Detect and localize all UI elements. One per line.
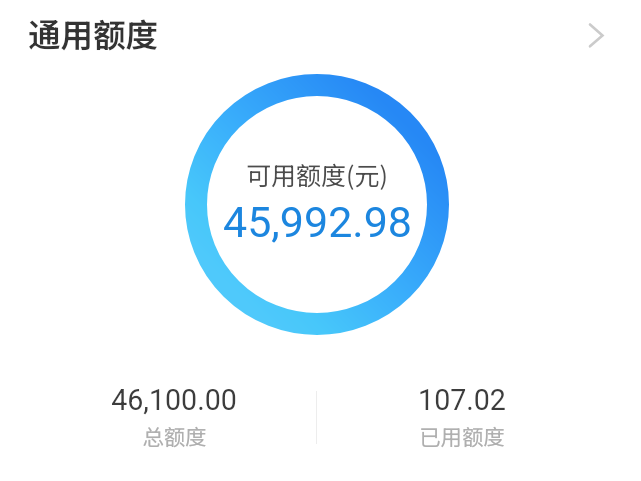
staticText: 46,100.00 <box>111 383 237 417</box>
staticText: 总额度 <box>142 420 207 451</box>
button[interactable]: 107.02 <box>351 383 573 451</box>
button[interactable]: 通用额度 <box>12 6 192 58</box>
staticText: 已用额度 <box>419 420 505 451</box>
staticText: 可用额度(元) <box>246 156 388 190</box>
staticText: 45,992.98 <box>223 197 412 247</box>
button[interactable]: More details <box>570 11 618 59</box>
button[interactable]: 46,100.00 <box>63 383 285 451</box>
staticText: 通用额度 <box>28 9 159 56</box>
staticText: 107.02 <box>418 383 506 417</box>
